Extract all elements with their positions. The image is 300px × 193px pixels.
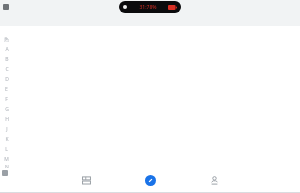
staticText: D xyxy=(5,76,9,83)
staticText: A xyxy=(5,46,9,53)
button[interactable]: Index scrubber xyxy=(2,34,11,168)
staticText: E xyxy=(5,86,8,93)
staticText: 31:78% xyxy=(130,4,166,11)
staticText: L xyxy=(5,146,8,153)
staticText: 热 xyxy=(4,36,9,42)
staticText: C xyxy=(5,66,9,73)
button[interactable]: Explore xyxy=(133,168,167,193)
staticText: M xyxy=(4,156,9,163)
button[interactable]: 31:78% xyxy=(119,1,181,13)
button[interactable]: Profile xyxy=(197,168,231,193)
staticText: N xyxy=(5,164,9,168)
staticText: H xyxy=(5,116,9,123)
staticText: F xyxy=(5,96,8,103)
staticText: J xyxy=(6,126,8,133)
other: Battery xyxy=(168,5,177,10)
button[interactable]: Feed xyxy=(69,168,103,193)
staticText: G xyxy=(5,106,9,113)
staticText: B xyxy=(5,56,9,63)
staticText: K xyxy=(5,136,9,143)
